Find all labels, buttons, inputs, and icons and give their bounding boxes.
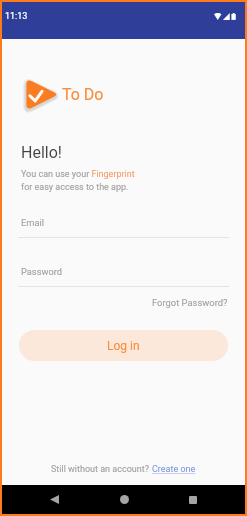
staticText: Forgot Password? <box>152 297 228 308</box>
button[interactable]: Back <box>37 485 71 514</box>
button[interactable]: Create one <box>152 464 196 475</box>
staticText: 11:13 <box>5 11 28 22</box>
staticText: Still without an account? <box>51 464 152 475</box>
staticText: Password <box>21 266 63 277</box>
staticText: You can use your Fingerprint for easy ac… <box>21 169 135 192</box>
button[interactable]: Recents <box>176 485 210 514</box>
button[interactable]: Home <box>107 485 141 514</box>
staticText: Hello! <box>21 143 62 162</box>
button[interactable]: Log in <box>19 330 228 361</box>
button[interactable]: Forgot Password? <box>152 297 228 308</box>
staticText: Log in <box>107 339 140 353</box>
staticText: Create one <box>152 464 196 475</box>
staticText: Email <box>21 217 45 228</box>
staticText: To Do <box>62 85 104 104</box>
